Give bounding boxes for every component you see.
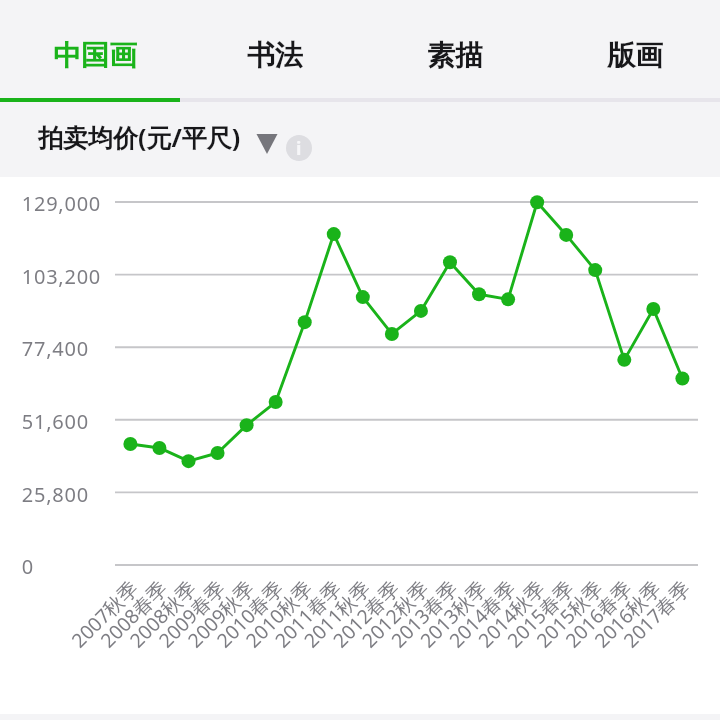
button[interactable]: 信息 (286, 135, 312, 161)
staticText: i (296, 136, 302, 161)
button[interactable]: 版画 (540, 0, 720, 99)
staticText: 书法 (247, 38, 303, 73)
staticText: 中国画 (53, 38, 137, 73)
staticText: 版画 (607, 38, 663, 73)
button[interactable]: 素描 (360, 0, 540, 99)
button[interactable]: 书法 (180, 0, 360, 99)
staticText: 拍卖均价(元/平尺) (38, 120, 241, 154)
button[interactable]: 中国画 (0, 0, 180, 99)
staticText: 素描 (427, 38, 483, 73)
button[interactable]: 展开 (256, 132, 278, 154)
